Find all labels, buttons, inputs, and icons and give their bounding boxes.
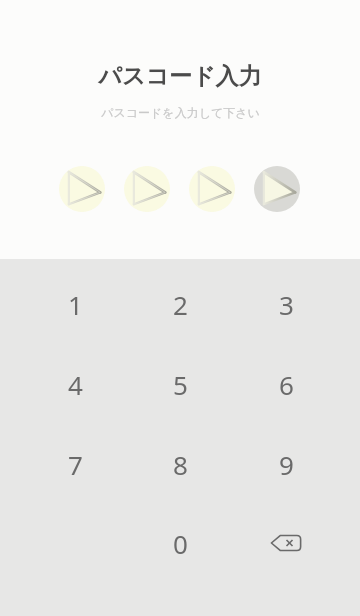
button[interactable]: 5 — [125, 345, 235, 423]
button[interactable]: 6 — [231, 345, 341, 423]
button[interactable]: 7 — [20, 425, 130, 503]
button[interactable]: 0 — [125, 504, 235, 582]
staticText: 3 — [279, 287, 294, 322]
button[interactable]: 3 — [231, 265, 341, 343]
button[interactable]: 4 — [20, 345, 130, 423]
button[interactable]: 8 — [125, 425, 235, 503]
staticText: 2 — [173, 287, 188, 322]
staticText: 5 — [173, 367, 188, 402]
staticText: 9 — [279, 447, 294, 482]
staticText: 4 — [68, 367, 83, 402]
staticText: 7 — [68, 447, 83, 482]
staticText: パスコードを入力して下さい — [101, 105, 260, 120]
button[interactable]: 1 — [20, 265, 130, 343]
staticText: パスコード入力 — [98, 62, 262, 91]
button[interactable]: 2 — [125, 265, 235, 343]
button[interactable]: 9 — [231, 425, 341, 503]
staticText: 1 — [68, 287, 83, 322]
staticText: 6 — [279, 367, 294, 402]
button[interactable]: Delete — [231, 504, 341, 582]
staticText: 8 — [173, 447, 188, 482]
staticText: 0 — [173, 526, 188, 561]
